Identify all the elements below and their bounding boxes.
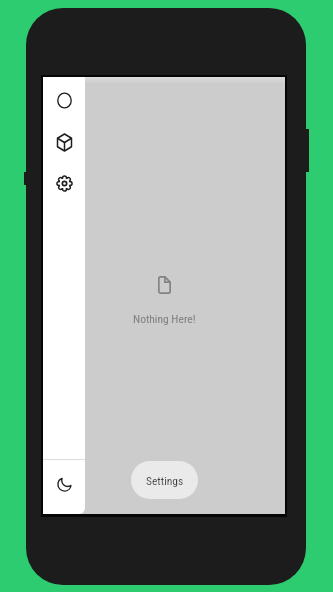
button[interactable]: Models <box>49 127 79 157</box>
button[interactable]: Home <box>49 85 79 115</box>
button[interactable]: Dark mode <box>49 469 79 499</box>
staticText: Nothing Here! <box>133 312 196 325</box>
button[interactable]: Settings <box>49 168 79 198</box>
staticText: Settings <box>146 474 184 487</box>
button[interactable]: Settings <box>131 461 198 499</box>
